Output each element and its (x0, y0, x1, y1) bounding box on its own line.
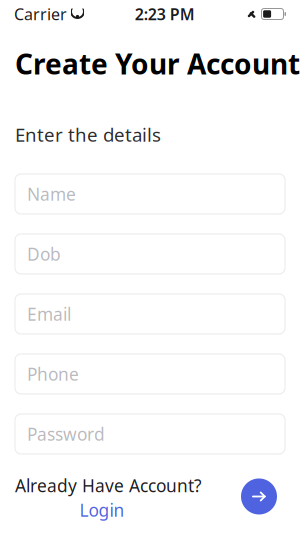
button[interactable]: Continue (241, 478, 277, 514)
staticText: Login (79, 498, 124, 521)
staticText: Already Have Account? (15, 474, 202, 497)
button[interactable]: Phone (15, 354, 285, 394)
staticText: Phone (27, 362, 79, 385)
button[interactable]: Email (15, 294, 285, 334)
staticText: Dob (27, 242, 61, 265)
button[interactable]: Login (15, 501, 189, 519)
staticText: Email (27, 302, 71, 325)
staticText: Create Your Account (15, 45, 300, 82)
button[interactable]: Dob (15, 234, 285, 274)
staticText: Name (27, 182, 76, 205)
staticText: Password (27, 422, 105, 445)
staticText: 2:23 PM (135, 3, 195, 25)
button[interactable]: Password (15, 414, 285, 454)
staticText: Carrier (14, 3, 67, 25)
button[interactable]: Name (15, 174, 285, 214)
staticText: Enter the details (15, 122, 161, 147)
